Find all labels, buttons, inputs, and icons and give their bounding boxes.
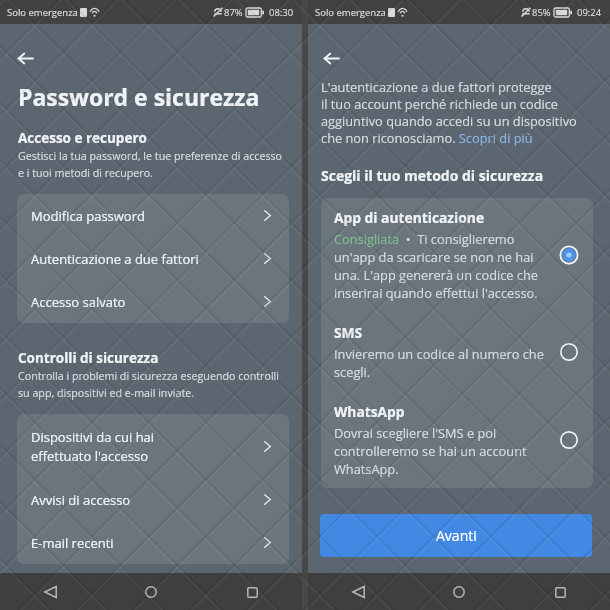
button[interactable]: Accesso salvato xyxy=(17,280,289,323)
staticText: Autenticazione a due fattori xyxy=(31,250,264,268)
staticText: Invieremo un codice al numero che scegli… xyxy=(334,345,544,381)
button[interactable]: E-mail recenti xyxy=(17,521,289,564)
staticText: Consigliata • Ti consiglieremo un'app da… xyxy=(334,230,539,302)
staticText: 87% xyxy=(224,6,243,19)
button[interactable]: Back xyxy=(11,46,40,71)
staticText: Avvisi di accesso xyxy=(31,491,264,509)
staticText: 09:24 xyxy=(577,6,602,19)
button[interactable]: Back xyxy=(317,46,346,71)
button[interactable]: Dispositivi da cui hai effettuato l'acce… xyxy=(17,414,289,478)
staticText: Dispositivi da cui hai effettuato l'acce… xyxy=(31,428,264,465)
button[interactable]: Recents xyxy=(542,574,578,610)
staticText: WhatsApp xyxy=(334,402,405,421)
staticText: Avanti xyxy=(436,526,477,545)
button[interactable]: WhatsApp xyxy=(321,392,593,488)
button[interactable]: Avanti xyxy=(320,514,592,557)
staticText: 08:30 xyxy=(269,6,294,19)
staticText: Scegli il tuo metodo di sicurezza xyxy=(321,166,544,185)
staticText: Accesso e recupero xyxy=(18,129,147,147)
staticText: 85% xyxy=(532,6,551,19)
button[interactable]: Autenticazione a due fattori xyxy=(17,237,289,280)
staticText: Password e sicurezza xyxy=(18,81,260,112)
staticText: Dovrai scegliere l'SMS e poi controllere… xyxy=(334,424,527,478)
staticText: App di autenticazione xyxy=(334,208,485,227)
button[interactable]: Back xyxy=(340,574,376,610)
staticText: Gestisci la tua password, le tue prefere… xyxy=(18,149,283,180)
staticText: Accesso salvato xyxy=(31,293,264,311)
button[interactable]: SMS xyxy=(321,312,593,392)
staticText: Modifica password xyxy=(31,207,264,225)
button[interactable]: Avvisi di accesso xyxy=(17,478,289,521)
button[interactable]: Back xyxy=(32,574,68,610)
button[interactable]: App di autenticazione xyxy=(321,198,593,312)
button[interactable]: Home xyxy=(133,574,169,610)
staticText: E-mail recenti xyxy=(31,534,264,552)
staticText: SMS xyxy=(334,323,363,342)
staticText: L'autenticazione a due fattori protegge … xyxy=(321,78,577,146)
button[interactable]: Recents xyxy=(234,574,270,610)
staticText: Solo emergenza xyxy=(7,6,78,19)
button[interactable]: Modifica password xyxy=(17,194,289,237)
staticText: Controlli di sicurezza xyxy=(18,349,159,367)
staticText: Solo emergenza xyxy=(315,6,386,19)
staticText: Controlla i problemi di sicurezza esegue… xyxy=(18,369,279,400)
button[interactable]: Home xyxy=(441,574,477,610)
